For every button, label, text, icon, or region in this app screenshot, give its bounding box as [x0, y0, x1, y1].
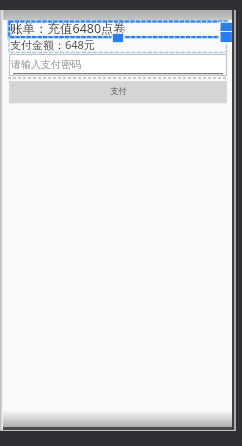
button[interactable]: 支付: [9, 81, 227, 102]
button[interactable]: 支付金额：648元: [9, 36, 227, 52]
staticText: 账单：充值6480点卷: [10, 20, 127, 36]
button[interactable]: 账单：充值6480点卷: [9, 20, 227, 36]
staticText: 请输入支付密码: [11, 58, 81, 71]
staticText: 支付: [110, 86, 127, 97]
staticText: 支付金额：648元: [10, 37, 95, 52]
button[interactable]: 请输入支付密码: [9, 54, 227, 76]
